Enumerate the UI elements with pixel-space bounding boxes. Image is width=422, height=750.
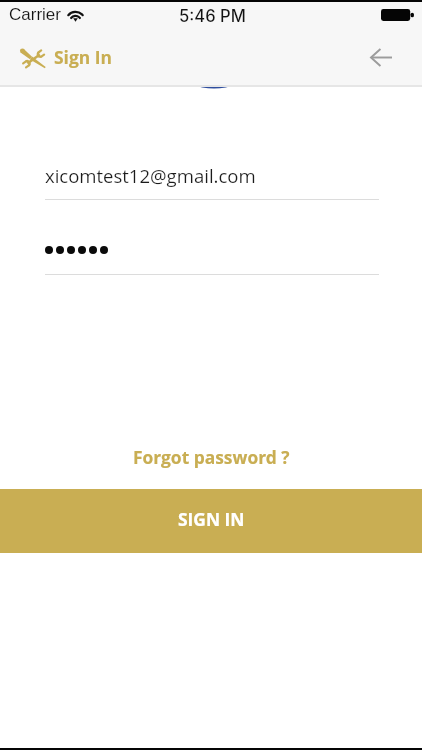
staticText: Forgot password ? [133, 445, 290, 469]
button[interactable]: Forgot password ? [0, 441, 422, 469]
button[interactable] [45, 237, 379, 275]
button[interactable]: SIGN IN [0, 489, 422, 553]
button[interactable]: Back [362, 38, 400, 76]
staticText: Sign In [54, 45, 112, 69]
staticText: SIGN IN [178, 507, 245, 531]
button[interactable]: xicomtest12@gmail.com [45, 162, 379, 200]
staticText: Carrier [9, 5, 61, 24]
staticText: 5:46 PM [179, 6, 246, 26]
staticText: xicomtest12@gmail.com [45, 163, 256, 188]
